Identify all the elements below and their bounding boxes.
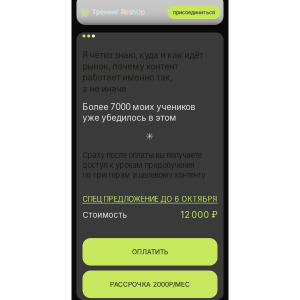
staticText: Тренинг ReshUp bbox=[92, 8, 145, 16]
button[interactable]: РАССРОЧКА 2000Р/МЕС bbox=[82, 271, 217, 298]
staticText: Сразу после оплаты вы получаете доступ к… bbox=[82, 151, 205, 180]
staticText: ОПЛАТИТЬ bbox=[132, 248, 168, 256]
button[interactable]: ОПЛАТИТЬ bbox=[82, 238, 217, 266]
staticText: Я чётко знаю, куда и как идёт рынок, поч… bbox=[82, 50, 203, 94]
staticText: Более 7000 моих учеников уже убедилось в… bbox=[82, 102, 195, 123]
staticText: РАССРОЧКА 2000Р/МЕС bbox=[110, 280, 190, 288]
button[interactable]: присоединиться bbox=[167, 5, 220, 19]
staticText: СПЕЦ ПРЕДЛОЖЕНИЕ ДО 6 ОКТЯБРЯ bbox=[82, 195, 217, 203]
staticText: присоединиться bbox=[173, 9, 215, 15]
staticText: ✳ bbox=[146, 131, 154, 142]
staticText: Стоимость bbox=[82, 210, 126, 220]
staticText: 12 000 ₽ bbox=[180, 209, 217, 220]
